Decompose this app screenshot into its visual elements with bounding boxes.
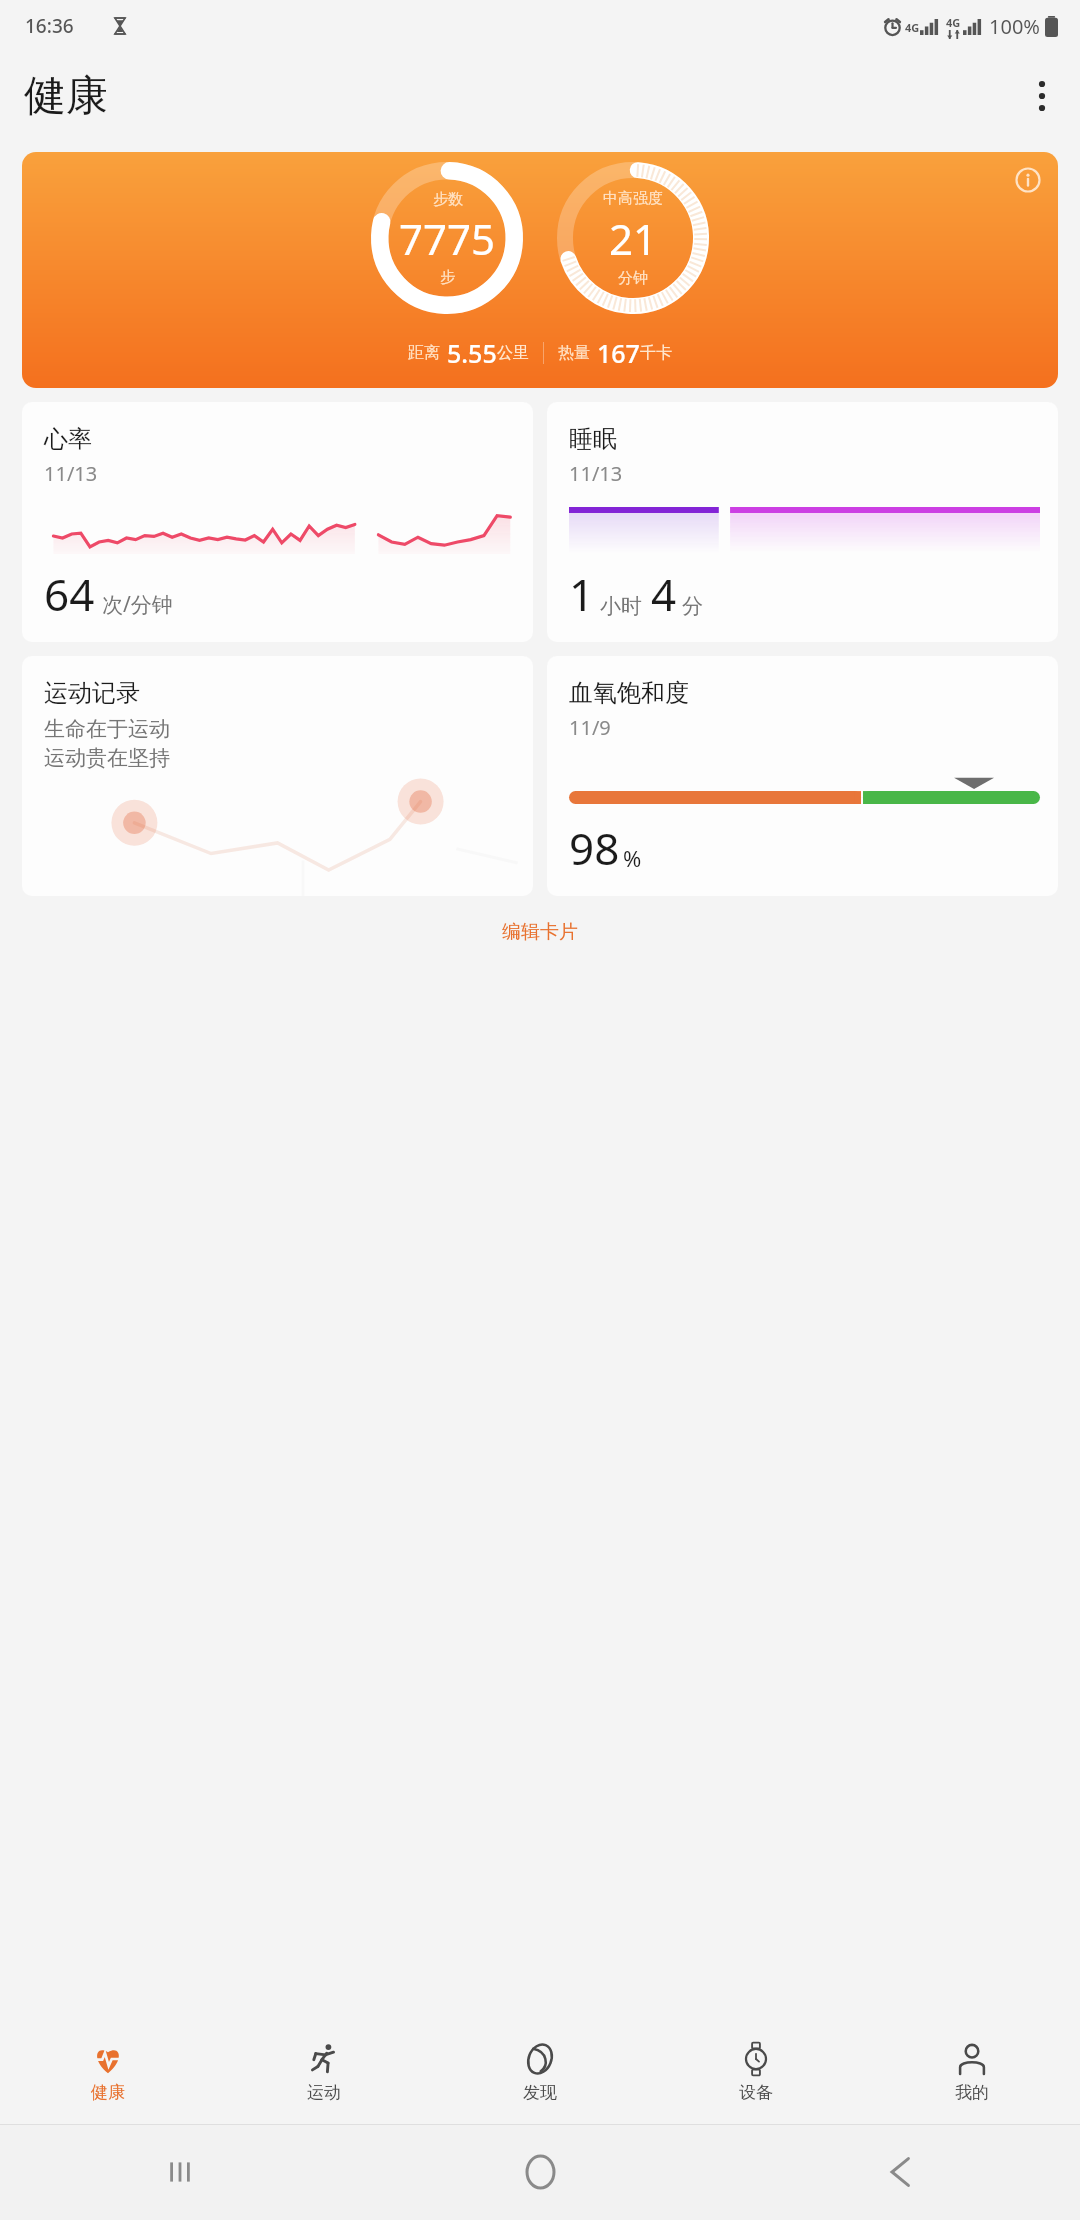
- staticText: 运动记录: [44, 678, 140, 708]
- button[interactable]: 运动记录: [22, 656, 533, 896]
- staticText: 步数: [433, 190, 463, 209]
- button[interactable]: Home: [360, 2124, 720, 2220]
- button[interactable]: 编辑卡片: [0, 912, 1080, 952]
- staticText: 公里: [497, 343, 529, 363]
- staticText: 健康: [91, 2082, 125, 2103]
- staticText: 4G: [905, 20, 920, 35]
- button[interactable]: 我的: [864, 2020, 1080, 2124]
- staticText: 16:36: [25, 13, 74, 39]
- staticText: 运动: [307, 2082, 341, 2103]
- staticText: 100%: [989, 13, 1040, 40]
- button[interactable]: Back: [720, 2124, 1080, 2220]
- button[interactable]: Recent apps: [0, 2124, 360, 2220]
- staticText: 我的: [955, 2082, 989, 2103]
- staticText: 小时: [600, 593, 642, 619]
- staticText: 千卡: [640, 343, 672, 363]
- button[interactable]: Information: [22, 152, 1058, 388]
- staticText: 4: [651, 564, 677, 624]
- button[interactable]: 血氧饱和度: [547, 656, 1058, 896]
- staticText: 生命在于运动: [44, 716, 170, 742]
- staticText: 1: [569, 564, 595, 624]
- staticText: 分钟: [618, 269, 648, 288]
- button[interactable]: More options: [1018, 72, 1066, 120]
- staticText: 次/分钟: [102, 590, 173, 619]
- staticText: 步: [440, 268, 455, 287]
- button[interactable]: 健康: [0, 2020, 216, 2124]
- staticText: 11/13: [569, 460, 623, 487]
- staticText: 4G: [946, 15, 961, 30]
- button[interactable]: 睡眠: [547, 402, 1058, 642]
- button[interactable]: 运动: [216, 2020, 432, 2124]
- staticText: 中高强度: [603, 189, 663, 208]
- staticText: 距离: [408, 343, 440, 363]
- staticText: 发现: [523, 2082, 557, 2103]
- staticText: 21: [609, 210, 658, 267]
- staticText: 设备: [739, 2082, 773, 2103]
- staticText: 7775: [399, 210, 496, 267]
- button[interactable]: 设备: [648, 2020, 864, 2124]
- staticText: 运动贵在坚持: [44, 745, 170, 771]
- staticText: 编辑卡片: [502, 920, 578, 944]
- button[interactable]: Information: [1010, 162, 1046, 198]
- staticText: 睡眠: [569, 424, 617, 454]
- staticText: 64: [44, 564, 95, 624]
- staticText: 98: [569, 818, 620, 878]
- staticText: 5.55: [447, 336, 497, 370]
- staticText: 167: [597, 336, 640, 370]
- staticText: 健康: [24, 70, 108, 123]
- staticText: 心率: [44, 424, 92, 454]
- button[interactable]: 发现: [432, 2020, 648, 2124]
- staticText: 分: [682, 593, 703, 619]
- button[interactable]: 心率: [22, 402, 533, 642]
- staticText: %: [623, 843, 642, 873]
- staticText: 11/13: [44, 460, 98, 487]
- staticText: 热量: [558, 343, 590, 363]
- staticText: 11/9: [569, 714, 611, 741]
- staticText: 血氧饱和度: [569, 678, 689, 708]
